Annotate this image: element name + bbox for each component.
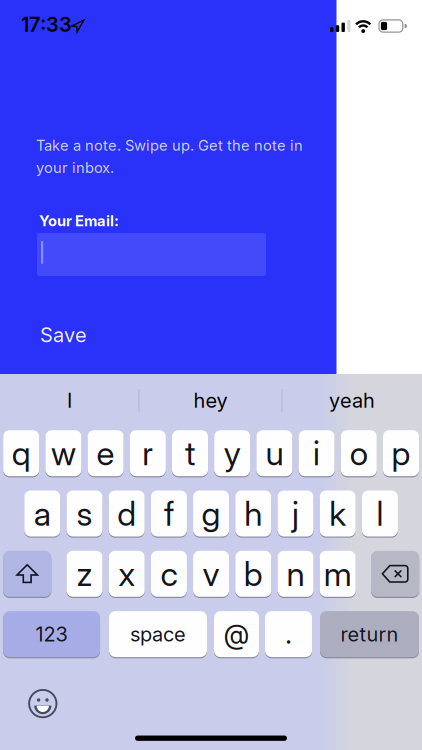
button[interactable]: y <box>214 429 250 477</box>
button[interactable]: s <box>66 489 103 537</box>
staticText: s <box>76 493 92 534</box>
staticText: r <box>142 433 153 473</box>
button[interactable]: c <box>151 550 187 598</box>
button[interactable]: k <box>320 489 356 537</box>
button[interactable]: e <box>88 429 124 477</box>
button[interactable]: v <box>193 550 229 598</box>
staticText: Your Email: <box>39 212 119 230</box>
button[interactable]: . <box>265 610 312 658</box>
button[interactable]: o <box>341 429 377 477</box>
staticText: x <box>118 554 135 594</box>
button[interactable]: x <box>109 550 145 598</box>
staticText: return <box>340 622 398 646</box>
staticText: v <box>203 554 220 594</box>
staticText: n <box>286 554 304 594</box>
button[interactable]: w <box>45 429 81 477</box>
button[interactable]: j <box>277 489 313 537</box>
staticText: yeah <box>329 389 375 412</box>
button[interactable]: l <box>362 489 398 537</box>
staticText: d <box>117 493 136 534</box>
staticText: j <box>292 493 299 534</box>
staticText: q <box>12 433 31 473</box>
button[interactable]: 123 <box>3 610 100 658</box>
staticText: . <box>285 618 292 650</box>
staticText: z <box>76 554 92 594</box>
staticText: h <box>244 493 262 534</box>
staticText: o <box>350 433 368 473</box>
staticText: your inbox. <box>36 159 114 176</box>
staticText: i <box>313 433 320 473</box>
button[interactable]: d <box>109 489 145 537</box>
staticText: I <box>67 389 72 412</box>
button[interactable]: I <box>9 380 129 420</box>
button[interactable]: n <box>277 550 313 598</box>
staticText: b <box>244 554 263 594</box>
button[interactable]: Delete <box>371 550 419 598</box>
button[interactable]: Save <box>40 323 140 347</box>
button[interactable]: Your Email <box>37 233 266 276</box>
staticText: k <box>329 493 346 534</box>
button[interactable]: hey <box>150 380 270 420</box>
staticText: f <box>164 493 174 534</box>
button[interactable]: h <box>235 489 271 537</box>
button[interactable]: r <box>130 429 166 477</box>
staticText: y <box>224 433 241 473</box>
button[interactable]: @ <box>214 610 259 658</box>
button[interactable]: g <box>193 489 229 537</box>
button[interactable]: Emoji <box>29 690 57 718</box>
staticText: @ <box>223 618 249 650</box>
button[interactable]: f <box>151 489 187 537</box>
button[interactable]: z <box>66 550 103 598</box>
staticText: Take a note. Swipe up. Get the note in <box>36 137 303 154</box>
button[interactable]: return <box>320 610 419 658</box>
staticText: c <box>160 554 177 594</box>
staticText: w <box>51 433 76 473</box>
button[interactable]: m <box>320 550 356 598</box>
button[interactable]: Shift <box>3 550 51 598</box>
staticText: m <box>324 554 352 594</box>
staticText: a <box>34 493 51 534</box>
button[interactable]: p <box>383 429 419 477</box>
button[interactable]: space <box>109 610 207 658</box>
staticText: g <box>202 493 221 534</box>
button[interactable]: yeah <box>292 380 412 420</box>
button[interactable]: i <box>299 429 335 477</box>
button[interactable]: a <box>24 489 60 537</box>
staticText: p <box>391 433 410 473</box>
staticText: 123 <box>36 622 68 646</box>
staticText: hey <box>193 389 227 412</box>
staticText: 17:33 <box>21 13 72 36</box>
staticText: l <box>376 493 383 534</box>
button[interactable]: u <box>256 429 292 477</box>
staticText: Save <box>40 323 87 347</box>
button[interactable]: b <box>235 550 271 598</box>
button[interactable]: t <box>172 429 208 477</box>
button[interactable]: q <box>3 429 39 477</box>
staticText: space <box>130 622 186 646</box>
staticText: t <box>185 433 195 473</box>
staticText: e <box>97 433 115 473</box>
staticText: u <box>265 433 283 473</box>
